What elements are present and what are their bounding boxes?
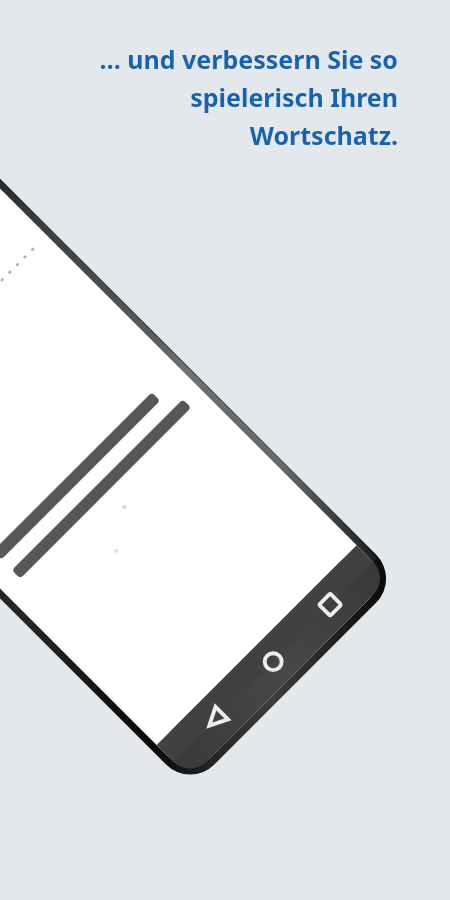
staticText: … und verbessern Sie so spielerisch Ihre… xyxy=(20,42,398,152)
button[interactable]: … und verbessern Sie so spielerisch Ihre… xyxy=(20,42,398,152)
